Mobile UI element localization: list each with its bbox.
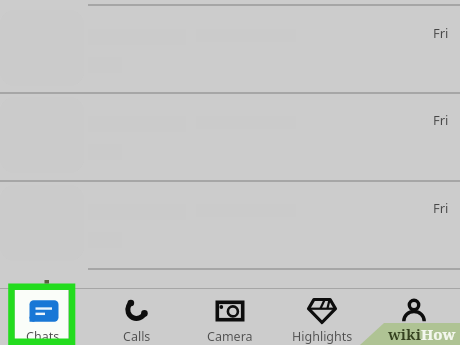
button[interactable]: Highlights (276, 289, 368, 345)
button[interactable]: Fri (0, 5, 460, 92)
staticText: Fri (433, 111, 449, 129)
button[interactable]: Profile (368, 289, 460, 345)
staticText: wiki (388, 324, 421, 344)
button[interactable]: Calls (92, 289, 184, 345)
button[interactable]: Fri (0, 180, 460, 268)
staticText: How (421, 324, 456, 344)
staticText: Chats (26, 328, 60, 345)
staticText: Camera (207, 328, 253, 345)
staticText: Fri (433, 24, 449, 42)
button[interactable]: Camera (184, 289, 276, 345)
staticText: Highlights (292, 328, 353, 345)
staticText: Fri (433, 199, 449, 217)
button[interactable]: Fri (0, 92, 460, 180)
button[interactable]: Chats (0, 289, 92, 345)
staticText: Calls (123, 328, 151, 345)
